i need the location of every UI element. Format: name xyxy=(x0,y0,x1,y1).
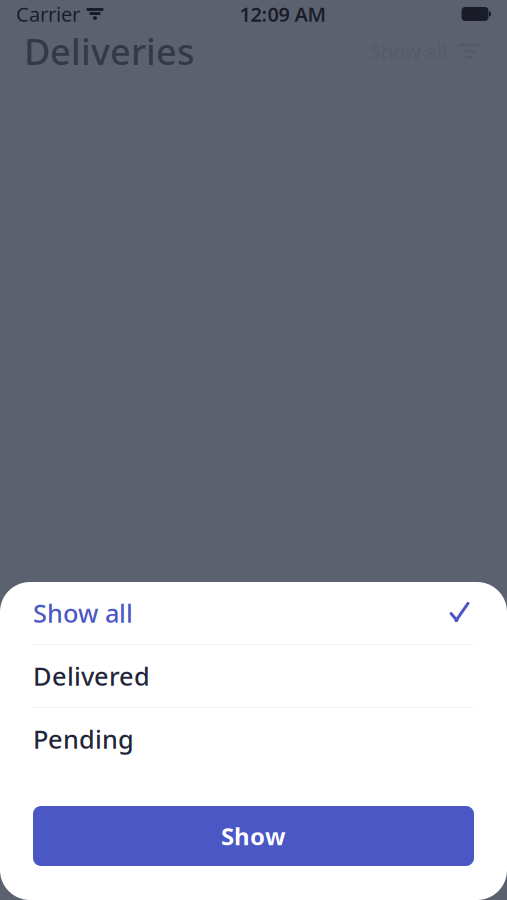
staticText: Pending xyxy=(33,722,134,756)
button[interactable]: Show xyxy=(33,806,474,866)
staticText: Show xyxy=(221,820,286,852)
button[interactable]: Delivered xyxy=(0,645,507,707)
button[interactable]: Pending xyxy=(0,708,507,770)
staticText: Delivered xyxy=(33,659,150,693)
staticText: Carrier xyxy=(16,1,80,27)
staticText: Show all xyxy=(33,596,133,630)
staticText: 12:09 AM xyxy=(239,1,326,27)
staticText: Deliveries xyxy=(24,27,194,75)
button[interactable]: Show all xyxy=(0,582,507,644)
